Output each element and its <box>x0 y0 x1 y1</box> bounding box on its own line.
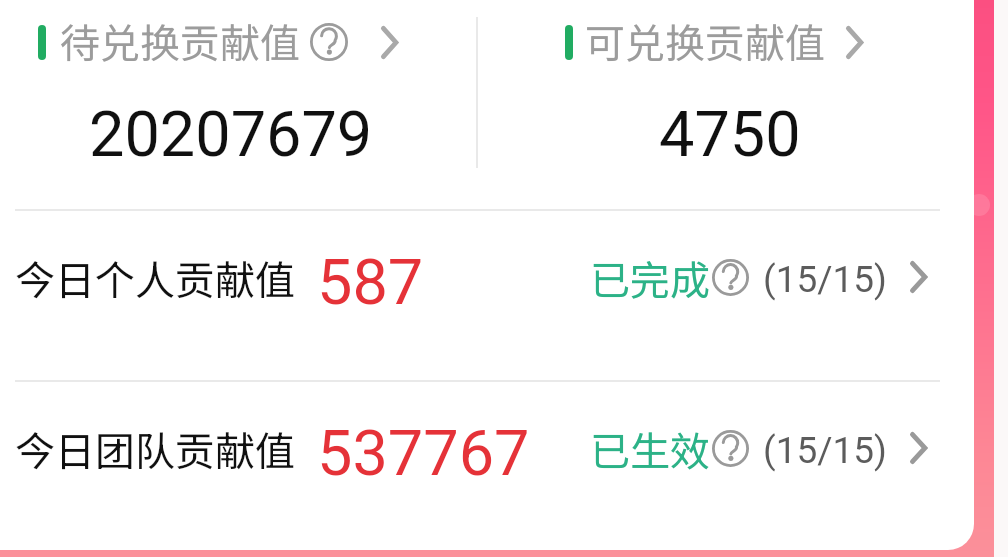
button[interactable]: 查看待兑换贡献值明细 <box>372 17 407 68</box>
staticText: 待兑换贡献值 <box>60 12 300 70</box>
staticText: 今日团队贡献值 <box>15 420 295 478</box>
staticText: (15/15) <box>763 429 887 472</box>
staticText: 可兑换贡献值 <box>585 12 825 70</box>
button[interactable]: 今日团队贡献值 <box>0 382 974 550</box>
button[interactable]: 已完成 说明 <box>708 255 753 300</box>
button[interactable]: 查看可兑换贡献值明细 <box>837 17 872 68</box>
staticText: (15/15) <box>763 258 887 301</box>
staticText: 已生效 <box>590 420 710 478</box>
button[interactable]: 待兑换贡献值说明 <box>306 19 352 65</box>
staticText: 今日个人贡献值 <box>15 249 295 307</box>
staticText: 20207679 <box>89 98 373 172</box>
staticText: 已完成 <box>590 249 710 307</box>
button[interactable]: 查看今日个人贡献值 明细 <box>901 252 936 302</box>
button[interactable]: 待兑换贡献值 <box>20 0 420 190</box>
button[interactable]: 已生效 说明 <box>708 426 753 471</box>
staticText: 587 <box>317 246 424 320</box>
button[interactable]: 今日个人贡献值 <box>0 211 974 380</box>
button[interactable]: 查看今日团队贡献值 明细 <box>901 423 936 473</box>
staticText: 4750 <box>659 98 801 172</box>
button[interactable]: 可兑换贡献值 <box>545 0 925 190</box>
staticText: 537767 <box>317 417 530 491</box>
